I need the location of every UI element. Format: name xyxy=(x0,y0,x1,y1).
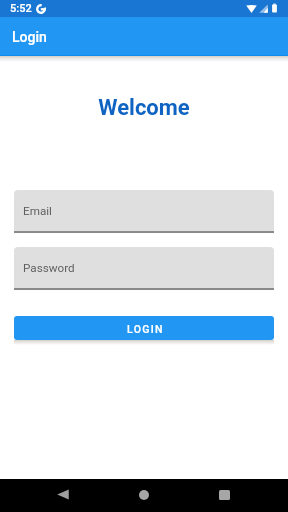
staticText: Password xyxy=(23,261,75,275)
button[interactable]: Recent apps xyxy=(208,478,242,511)
button[interactable]: Back xyxy=(47,478,81,511)
button[interactable]: Password xyxy=(14,247,274,290)
staticText: LOGIN xyxy=(127,323,164,335)
staticText: 5:52 xyxy=(10,2,32,15)
staticText: Login xyxy=(12,29,47,45)
staticText: Welcome xyxy=(0,95,288,121)
button[interactable]: Home xyxy=(127,478,161,511)
staticText: Email xyxy=(23,204,52,218)
button[interactable]: Email xyxy=(14,190,274,233)
button[interactable]: LOGIN xyxy=(14,316,274,340)
